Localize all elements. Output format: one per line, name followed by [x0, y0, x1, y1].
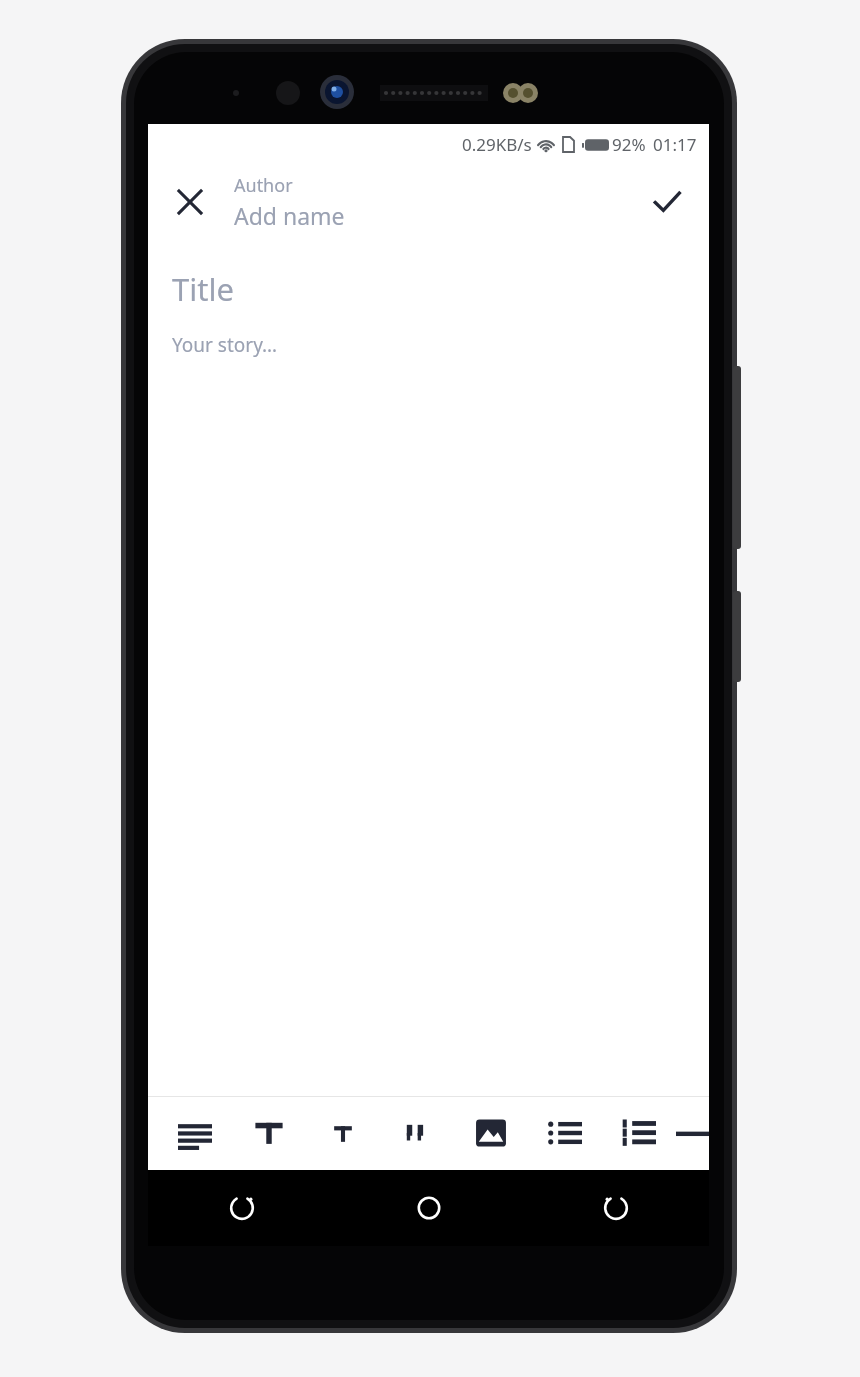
staticText: Your story…: [172, 332, 278, 358]
button[interactable]: Home: [392, 1171, 466, 1245]
button[interactable]: Quote: [380, 1096, 454, 1170]
staticText: Title: [172, 268, 234, 310]
button[interactable]: Author: [234, 173, 345, 231]
staticText: Add name: [234, 200, 345, 231]
staticText: 0.29KB/s: [462, 133, 532, 156]
staticText: 92%: [612, 133, 646, 156]
button[interactable]: Numbered list: [602, 1096, 676, 1170]
button[interactable]: Back: [579, 1171, 653, 1245]
button[interactable]: Insert image: [454, 1096, 528, 1170]
staticText: 01:17: [653, 133, 697, 156]
button[interactable]: Align: [158, 1096, 232, 1170]
button[interactable]: Divider: [676, 1096, 709, 1170]
staticText: Author: [234, 173, 293, 198]
button[interactable]: Subheading: [306, 1096, 380, 1170]
button[interactable]: Close: [164, 176, 216, 228]
button[interactable]: Bulleted list: [528, 1096, 602, 1170]
button[interactable]: Heading: [232, 1096, 306, 1170]
button[interactable]: Recents: [205, 1171, 279, 1245]
button[interactable]: Done: [641, 176, 693, 228]
